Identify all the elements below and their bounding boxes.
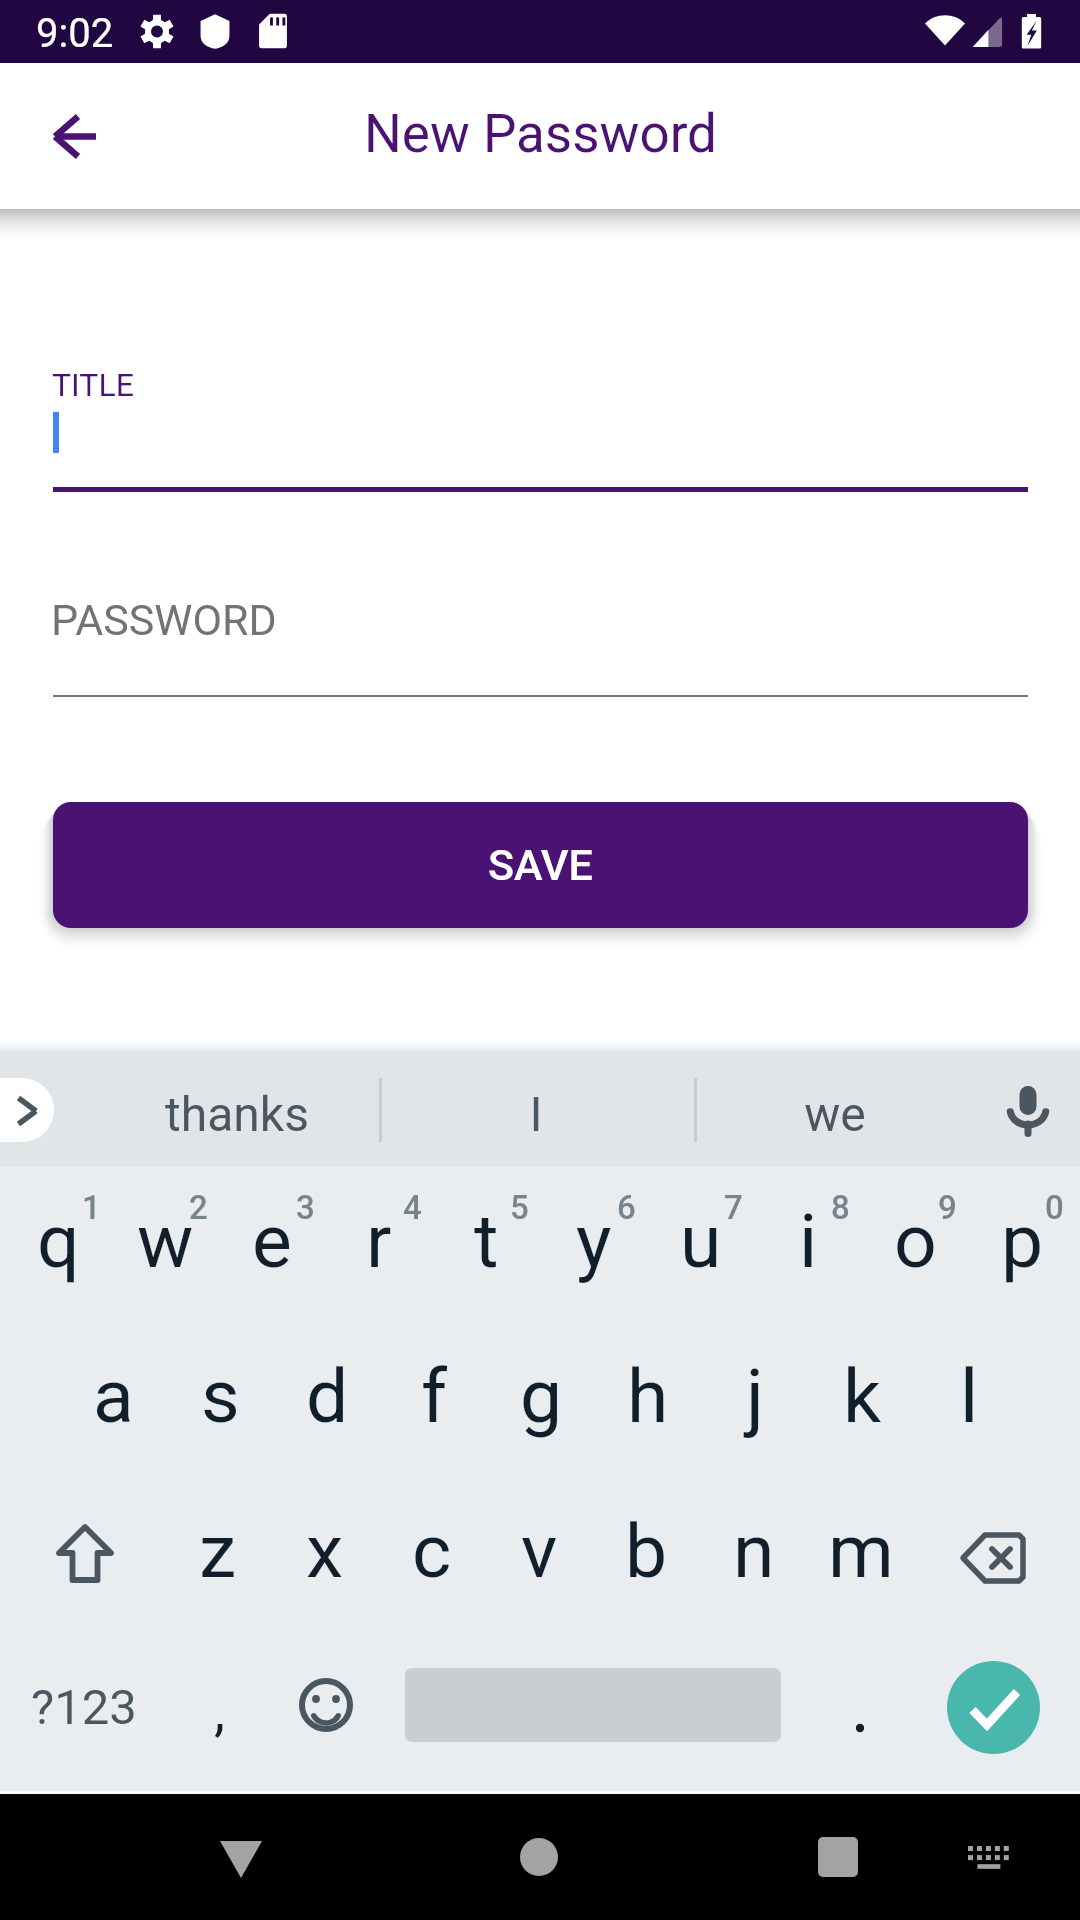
button[interactable]: Home [479,1797,599,1917]
button[interactable]: z [164,1461,272,1613]
staticText: d [306,1352,349,1440]
staticText: 2 [189,1188,208,1227]
staticText: we [804,1086,866,1142]
staticText: 8 [831,1188,850,1227]
button[interactable]: we [721,1052,949,1167]
button[interactable]: d [273,1306,381,1458]
staticText: 9:02 [36,10,114,57]
button[interactable]: j [701,1306,809,1458]
staticText: n [733,1507,775,1595]
staticText: o [894,1197,937,1285]
staticText: v [521,1507,558,1595]
staticText: l [960,1352,979,1440]
staticText: t [474,1197,499,1285]
staticText: x [306,1507,344,1595]
staticText: m [828,1507,894,1595]
staticText: 5 [510,1188,529,1227]
button[interactable]: Shift [5,1495,165,1615]
staticText: p [1001,1197,1044,1285]
button[interactable]: Backspace [920,1498,1080,1618]
staticText: j [746,1352,764,1440]
staticText: k [843,1352,882,1440]
button[interactable]: m [807,1461,915,1613]
button[interactable]: Voice input [968,1062,1080,1162]
button[interactable]: Expand suggestions [0,1078,54,1142]
button[interactable]: SAVE [53,802,1028,928]
staticText: , [214,1678,226,1744]
staticText: I [529,1086,543,1142]
staticText: f [421,1352,448,1440]
staticText: 9 [938,1188,957,1227]
staticText: g [520,1352,563,1440]
button[interactable]: b [592,1461,700,1613]
button[interactable]: x [271,1461,379,1613]
staticText: e [252,1197,292,1285]
button[interactable]: q [4,1151,112,1303]
button[interactable]: r [325,1151,433,1303]
staticText: New Password [364,103,717,165]
button[interactable]: Comma [168,1637,272,1777]
button[interactable]: c [378,1461,486,1613]
staticText: 7 [724,1188,743,1227]
staticText: c [412,1507,452,1595]
staticText: i [799,1197,818,1285]
button[interactable]: Back [5,88,101,184]
staticText: 6 [617,1188,636,1227]
button[interactable]: ?123 [0,1637,168,1777]
staticText: y [576,1197,612,1285]
staticText: 4 [403,1188,422,1227]
button[interactable]: Recent apps [778,1797,898,1917]
button[interactable]: k [808,1306,916,1458]
staticText: w [137,1197,194,1285]
button[interactable]: v [485,1461,593,1613]
button[interactable]: Done [947,1661,1040,1754]
button[interactable]: u [647,1151,755,1303]
button[interactable]: Change keyboard [929,1797,1049,1917]
staticText: h [627,1352,669,1440]
staticText: thanks [165,1086,309,1142]
button[interactable]: o [861,1151,969,1303]
button[interactable]: Period [808,1637,912,1777]
button[interactable]: n [700,1461,808,1613]
button[interactable]: f [380,1306,488,1458]
button[interactable]: y [540,1151,648,1303]
button[interactable]: s [166,1306,274,1458]
button[interactable]: i [754,1151,862,1303]
staticText: u [680,1197,722,1285]
staticText: r [366,1197,392,1285]
staticText: 3 [296,1188,315,1227]
staticText: a [93,1352,134,1440]
button[interactable]: l [915,1306,1023,1458]
button[interactable]: t [432,1151,540,1303]
button[interactable]: g [487,1306,595,1458]
button[interactable]: Emoji [276,1645,376,1765]
staticText: s [201,1352,240,1440]
staticText: 0 [1045,1188,1064,1227]
button[interactable]: Back [181,1797,301,1917]
staticText: PASSWORD [51,595,277,645]
staticText: SAVE [488,840,593,890]
button[interactable]: thanks [107,1052,367,1167]
button[interactable]: e [218,1151,326,1303]
staticText: b [625,1507,668,1595]
button[interactable]: h [594,1306,702,1458]
button[interactable]: I [406,1052,666,1167]
button[interactable]: a [59,1306,167,1458]
staticText: TITLE [52,366,134,404]
staticText: 1 [82,1188,101,1227]
staticText: q [37,1197,80,1285]
staticText: ?123 [31,1679,137,1736]
button[interactable]: w [111,1151,219,1303]
button[interactable]: p [968,1151,1076,1303]
staticText: z [199,1507,237,1595]
